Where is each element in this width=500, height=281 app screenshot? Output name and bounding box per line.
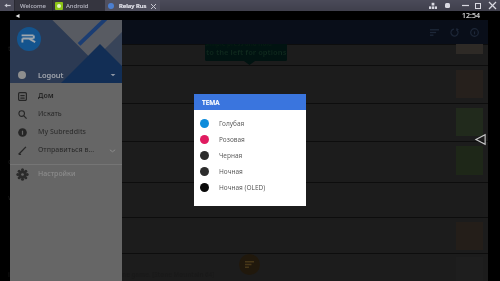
button[interactable] (10, 141, 488, 182)
button[interactable]: Back (0, 0, 14, 11)
staticText: ice shooter during a Battlefield 3 onlin… (8, 270, 215, 278)
staticText: Голубая (219, 119, 245, 128)
button[interactable]: Multi instance (429, 0, 437, 11)
button[interactable]: Отправиться в... (10, 141, 122, 159)
staticText: Logout (38, 70, 64, 80)
button[interactable] (10, 65, 488, 103)
staticText: Розовая (219, 135, 245, 144)
staticText: 12:54 (462, 11, 480, 20)
button[interactable]: Ночная (OLED) (194, 179, 306, 195)
staticText: Relay Rus (119, 2, 147, 10)
button[interactable]: Refresh (444, 22, 464, 42)
button[interactable]: Relay Rus (105, 0, 160, 11)
button[interactable] (10, 253, 488, 281)
button[interactable] (10, 217, 488, 253)
button[interactable]: Info (464, 22, 484, 42)
button[interactable]: My Subreddits (10, 123, 122, 141)
staticText: Дом (38, 91, 54, 101)
staticText: to the left for options (206, 47, 287, 57)
staticText: Искать (38, 109, 62, 119)
staticText: Welcome (20, 2, 46, 10)
staticText: Android (66, 2, 89, 10)
staticText: Ночная (OLED) (219, 183, 266, 192)
button[interactable]: Дом (10, 87, 122, 105)
staticText: Черная (219, 151, 243, 160)
button[interactable]: Close tab (149, 2, 157, 10)
button[interactable]: Settings (445, 0, 450, 11)
button[interactable] (10, 182, 488, 217)
button[interactable]: Logout (10, 67, 122, 83)
staticText: Настройки (38, 169, 76, 179)
button[interactable]: Настройки (10, 165, 122, 183)
button[interactable]: Ночная (194, 163, 306, 179)
button[interactable] (10, 44, 488, 65)
button[interactable]: Profile (17, 27, 41, 51)
button[interactable] (10, 103, 488, 141)
button[interactable]: Minimize (462, 0, 469, 11)
button[interactable]: Искать (10, 105, 122, 123)
staticText: t tasted very good. (8, 44, 67, 52)
staticText: who won gold medal #19РІ (8, 193, 91, 201)
button[interactable]: Close (489, 0, 496, 11)
button[interactable]: Sort (424, 22, 444, 42)
staticText: cinnati Harambee (8, 157, 64, 165)
button[interactable]: Back (475, 134, 486, 145)
button[interactable]: Розовая (194, 131, 306, 147)
staticText: Ночная (219, 167, 243, 176)
button[interactable]: Голубая (194, 115, 306, 131)
staticText: Отправиться в... (38, 145, 95, 155)
staticText: My Subreddits (38, 127, 87, 137)
staticText: simple press and hold anywhere (205, 39, 287, 47)
button[interactable]: Welcome (15, 0, 52, 11)
button[interactable]: Android (53, 0, 105, 11)
button[interactable]: Черная (194, 147, 306, 163)
button[interactable]: Sort posts (239, 254, 260, 275)
button[interactable]: Restore (475, 0, 481, 11)
staticText: ТЕМА (202, 98, 220, 107)
